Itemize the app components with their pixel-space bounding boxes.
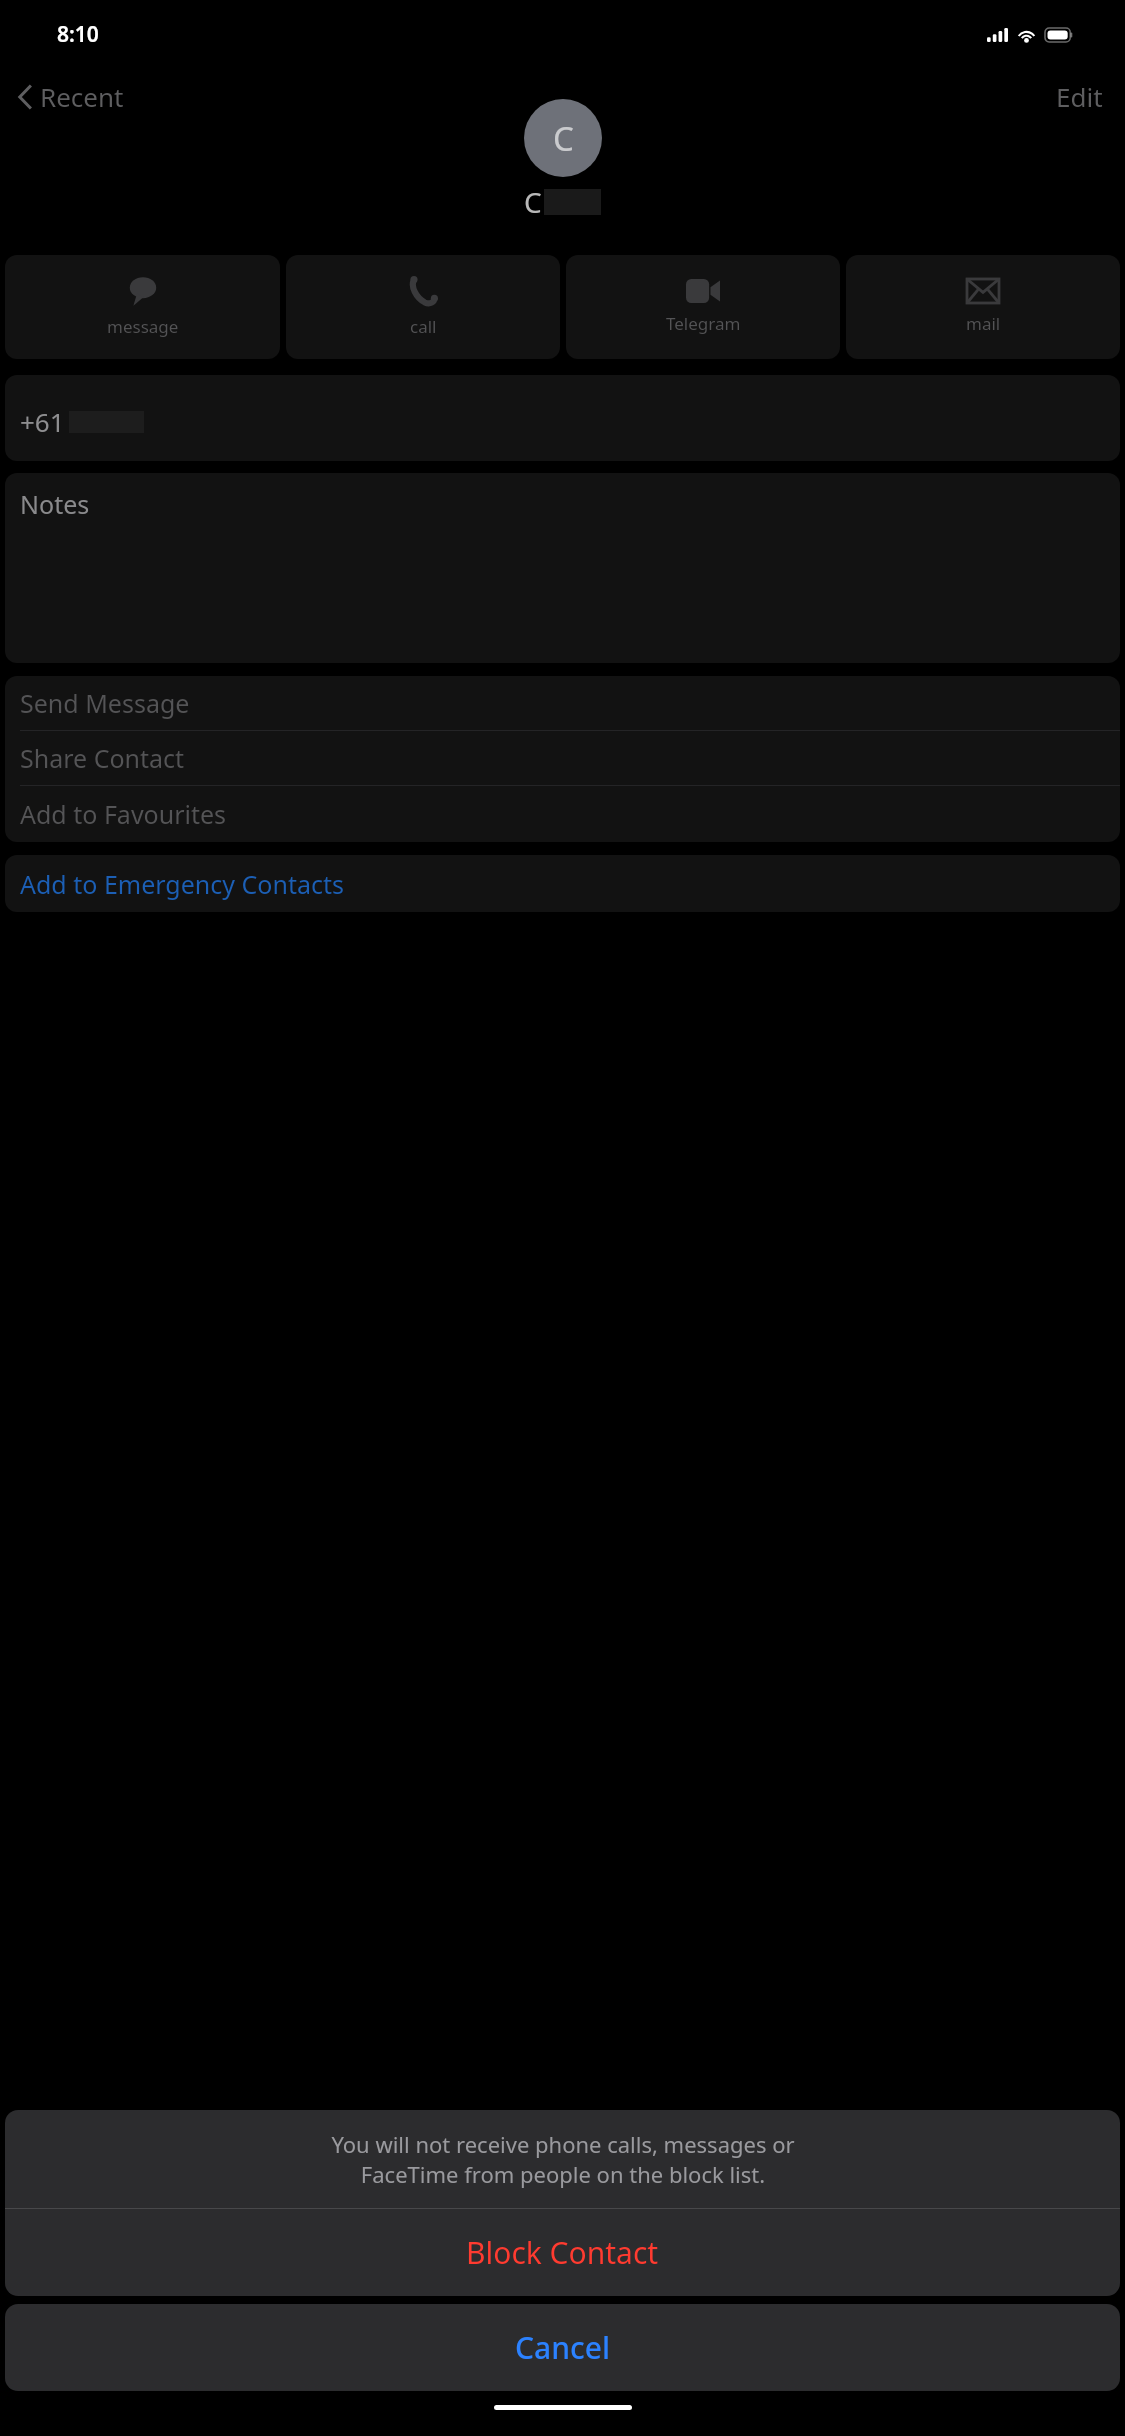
button[interactable]: mail xyxy=(846,255,1120,359)
staticText: message xyxy=(107,315,179,338)
staticText: +61 xyxy=(20,404,65,439)
staticText: Share Contact xyxy=(20,741,185,775)
button[interactable]: Contact photo xyxy=(524,99,602,177)
staticText: C xyxy=(524,183,542,221)
staticText: Block Contact xyxy=(466,2232,659,2273)
button[interactable]: Add to Emergency Contacts xyxy=(5,855,1120,912)
button[interactable]: +61 xyxy=(5,375,1120,461)
staticText: mail xyxy=(966,312,1001,335)
button[interactable]: Recent xyxy=(0,73,136,120)
button[interactable]: Cancel xyxy=(5,2304,1120,2391)
button[interactable]: Share Contact xyxy=(5,731,1120,786)
button[interactable]: Add to Favourites xyxy=(5,786,1120,842)
button[interactable]: Telegram xyxy=(566,255,840,359)
staticText: call xyxy=(410,315,437,338)
staticText: Send Message xyxy=(20,686,190,720)
button[interactable]: call xyxy=(286,255,560,359)
button[interactable]: Edit xyxy=(1034,71,1125,122)
button[interactable]: Send Message xyxy=(5,676,1120,731)
button[interactable]: Notes xyxy=(5,473,1120,663)
staticText: Notes xyxy=(20,487,90,521)
staticText: You will not receive phone calls, messag… xyxy=(331,2129,795,2189)
staticText: Cancel xyxy=(515,2327,611,2368)
button[interactable]: message xyxy=(5,255,280,359)
staticText: Add to Emergency Contacts xyxy=(20,867,344,901)
staticText: 8:10 xyxy=(57,20,99,49)
staticText: Add to Favourites xyxy=(20,797,227,831)
staticText: Recent xyxy=(40,79,124,114)
staticText: C xyxy=(553,116,574,161)
button[interactable]: Block Contact xyxy=(5,2209,1120,2296)
staticText: Telegram xyxy=(666,312,741,335)
